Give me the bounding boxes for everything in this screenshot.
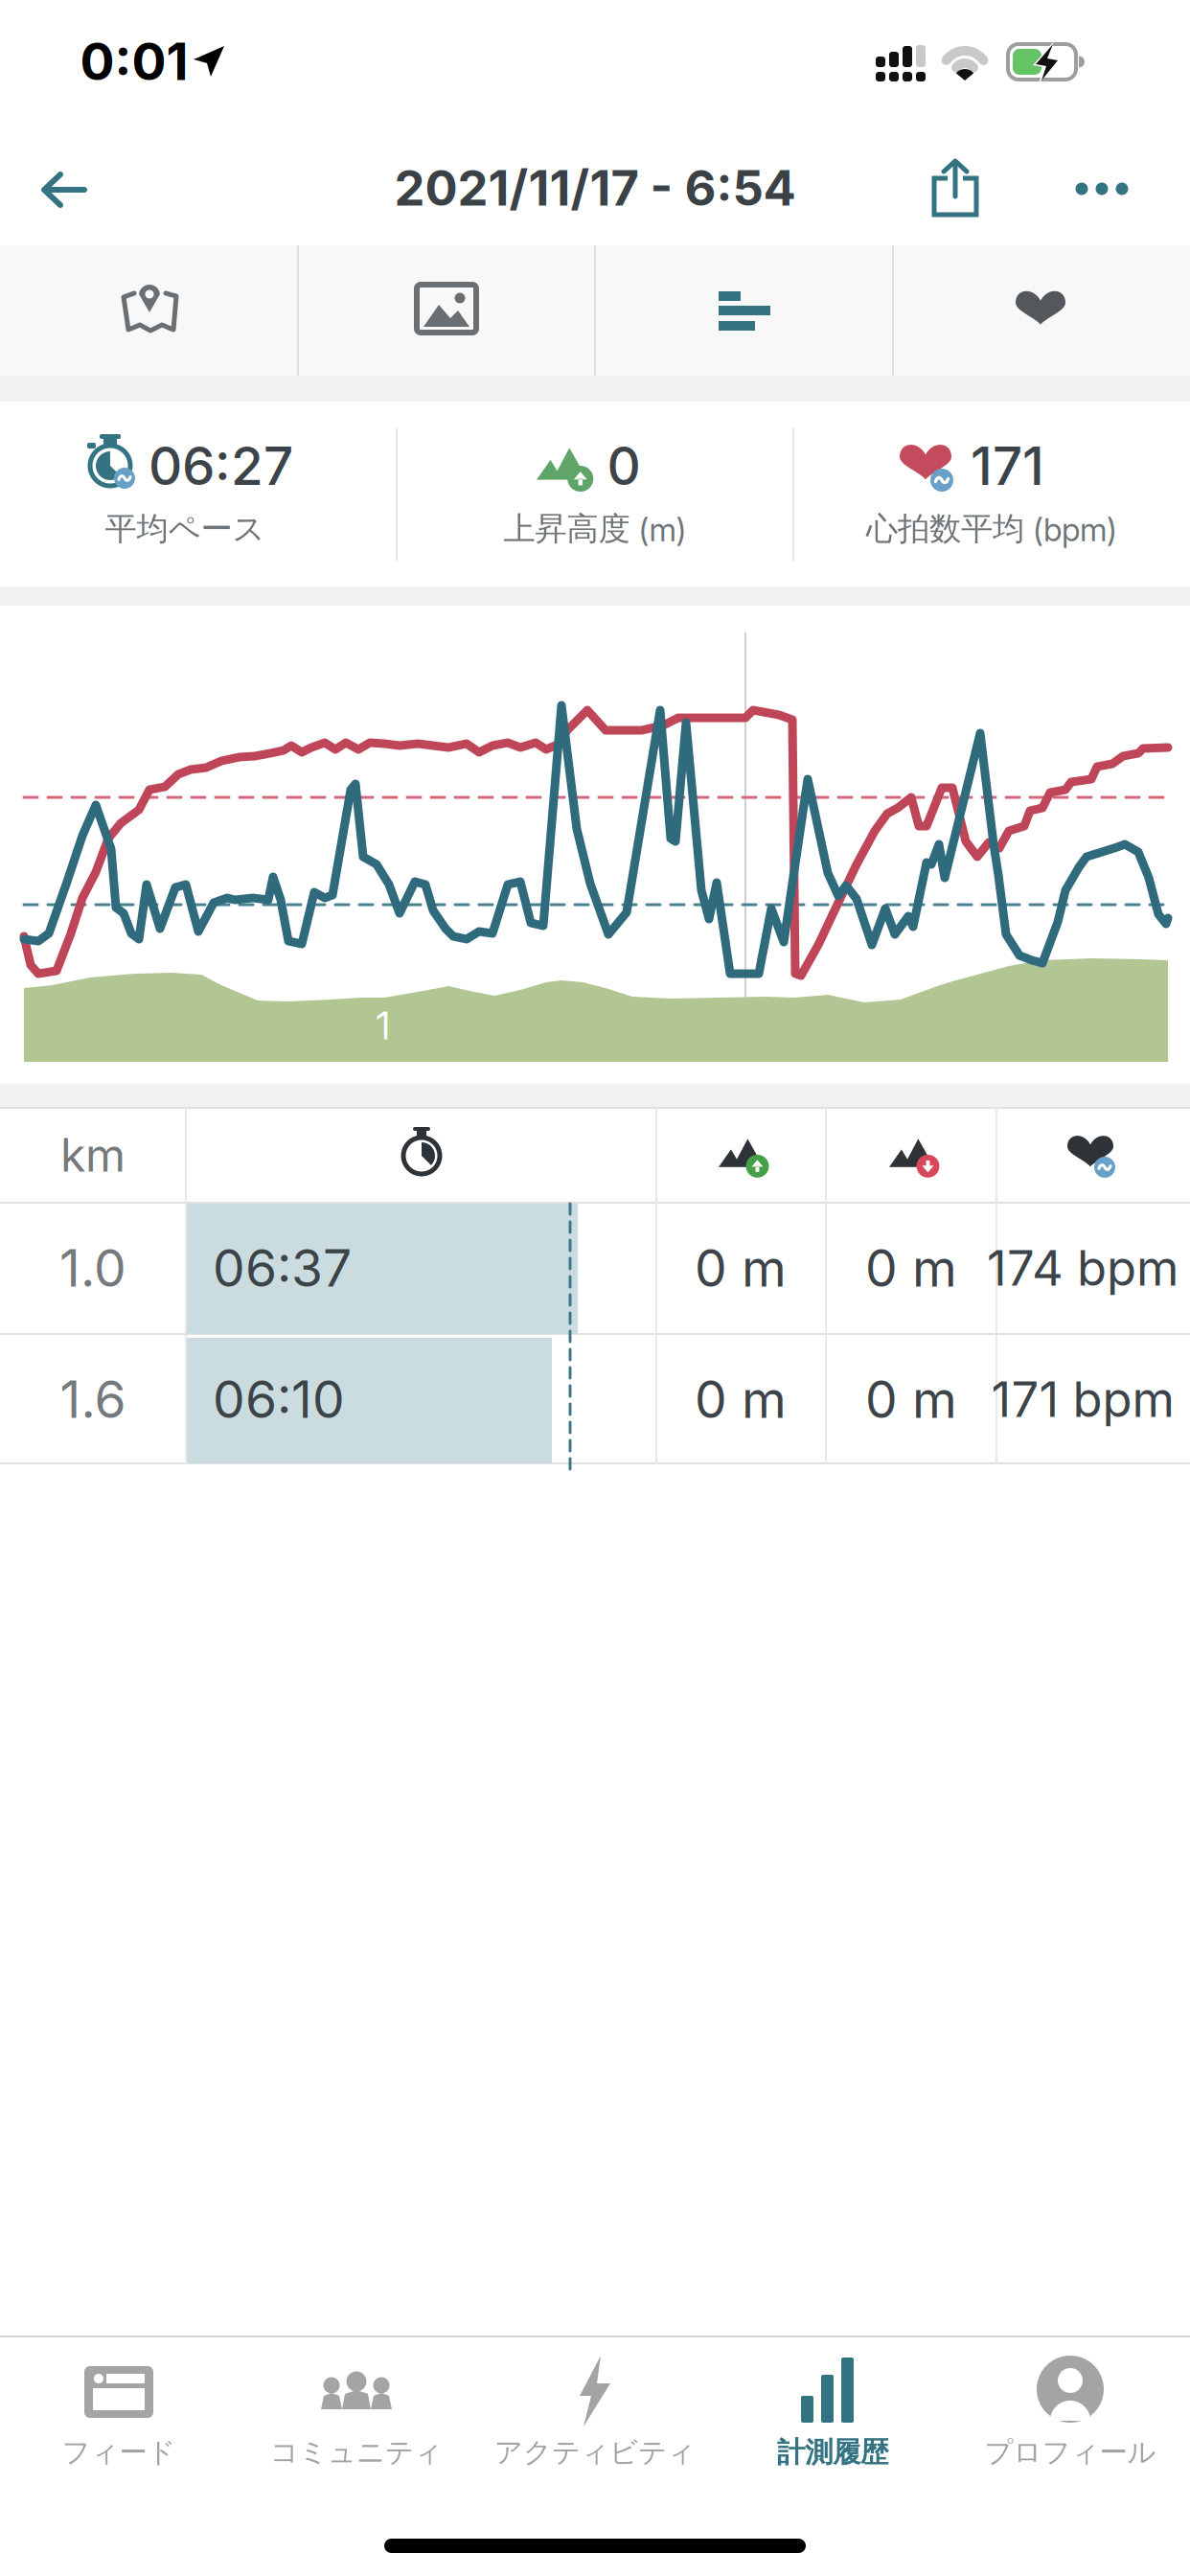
staticText: 計測履歴: [777, 2435, 888, 2470]
button[interactable]: コミュニティ: [238, 2335, 475, 2508]
button[interactable]: More: [1059, 160, 1145, 218]
staticText: フィード: [62, 2435, 176, 2470]
staticText: 0 m: [865, 1237, 957, 1299]
button[interactable]: Map: [0, 245, 297, 376]
staticText: 0:01: [80, 30, 188, 92]
staticText: 1: [376, 1002, 390, 1049]
staticText: 2021/11/17 - 6:54: [394, 158, 796, 217]
staticText: 06:27: [149, 434, 293, 497]
staticText: km: [60, 1127, 126, 1183]
staticText: 平均ペース: [105, 509, 265, 549]
button[interactable]: Share: [912, 144, 998, 236]
staticText: 1.6: [60, 1368, 126, 1430]
staticText: 1.0: [59, 1237, 126, 1299]
staticText: アクティビティ: [494, 2435, 696, 2470]
button[interactable]: フィード: [0, 2335, 238, 2508]
staticText: 171 bpm: [991, 1370, 1174, 1428]
button[interactable]: Analysis: [595, 245, 892, 376]
staticText: コミュニティ: [270, 2435, 443, 2470]
staticText: 0 m: [695, 1237, 787, 1299]
staticText: 171: [971, 434, 1044, 497]
button[interactable]: 計測履歴: [714, 2335, 951, 2508]
staticText: 06:37: [213, 1237, 352, 1299]
staticText: 0 m: [695, 1368, 787, 1430]
button[interactable]: Heart rate: [892, 245, 1189, 376]
staticText: 06:10: [213, 1368, 345, 1430]
staticText: 0: [607, 434, 641, 497]
staticText: 心拍数平均 (bpm): [866, 509, 1117, 549]
button[interactable]: アクティビティ: [476, 2335, 714, 2508]
button[interactable]: Back: [20, 147, 106, 233]
staticText: プロフィール: [984, 2435, 1156, 2470]
staticText: 上昇高度 (m): [503, 509, 687, 549]
button[interactable]: プロフィール: [951, 2335, 1189, 2508]
staticText: 174 bpm: [987, 1238, 1179, 1297]
staticText: 0 m: [865, 1368, 957, 1430]
button[interactable]: Photos: [298, 245, 595, 376]
